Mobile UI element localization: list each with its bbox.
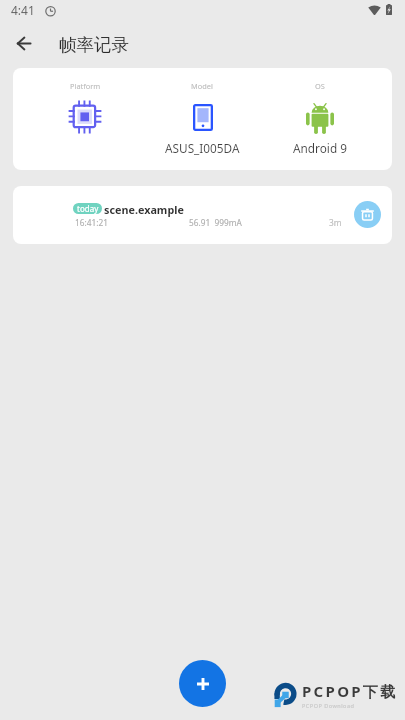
staticText: Android 9	[293, 140, 347, 156]
staticText: scene.example	[104, 202, 184, 217]
staticText: 56.91 999mA	[189, 217, 242, 228]
staticText: PCPOP Download	[302, 702, 355, 709]
staticText: Model	[191, 81, 213, 91]
staticText: today	[77, 203, 99, 214]
staticText: 3m	[329, 217, 342, 228]
button[interactable]: Add record	[179, 660, 226, 707]
button[interactable]: Back	[8, 28, 39, 59]
staticText: 4:41	[11, 2, 35, 18]
button[interactable]: today	[13, 186, 392, 244]
staticText: 帧率记录	[59, 34, 129, 56]
staticText: OS	[315, 81, 325, 91]
button[interactable]: Delete	[354, 201, 381, 228]
staticText: 16:41:21	[75, 217, 108, 228]
staticText: PCPOP下载	[302, 681, 398, 701]
staticText: ASUS_I005DA	[165, 140, 240, 156]
staticText: Platform	[70, 81, 101, 91]
